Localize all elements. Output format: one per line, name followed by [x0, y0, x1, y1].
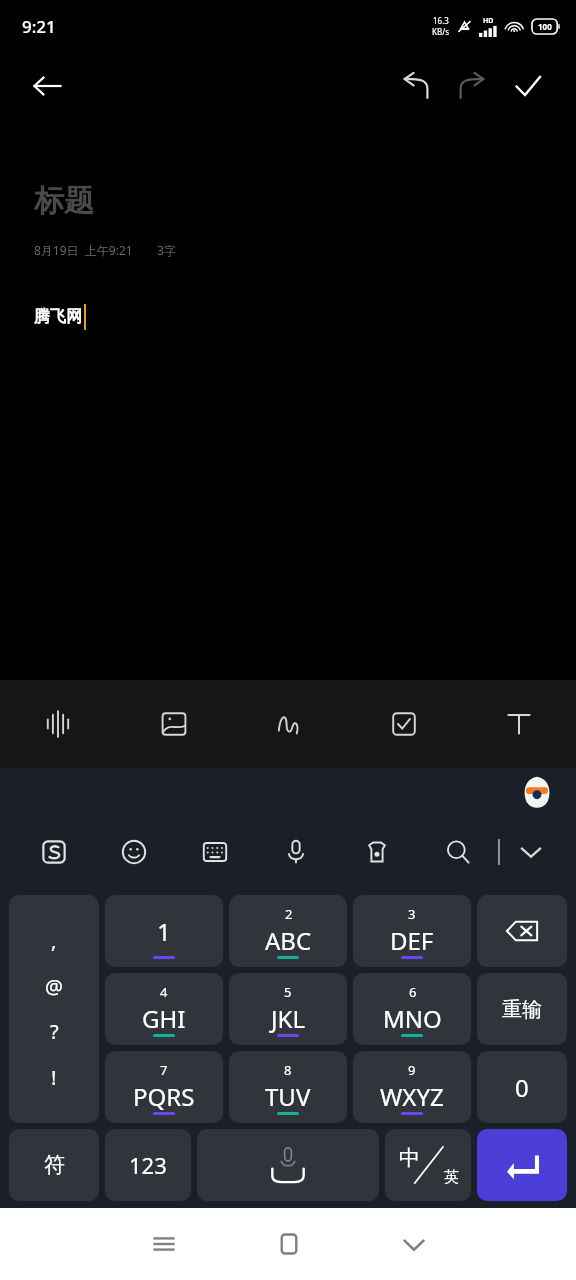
button[interactable]: Keyboard: [174, 816, 255, 888]
staticText: 6: [409, 983, 417, 1001]
button[interactable]: 6: [353, 973, 471, 1045]
button[interactable]: Voice input: [255, 816, 336, 888]
staticText: 16.3: [433, 15, 449, 26]
button[interactable]: 符: [9, 1129, 99, 1201]
staticText: 4: [160, 983, 168, 1001]
button[interactable]: Undo: [388, 58, 444, 114]
button[interactable]: 中: [385, 1129, 471, 1201]
button[interactable]: 8: [229, 1051, 347, 1123]
button[interactable]: 0: [477, 1051, 567, 1123]
staticText: 100: [538, 21, 552, 32]
staticText: MNO: [383, 1002, 442, 1035]
staticText: WXYZ: [380, 1080, 444, 1113]
staticText: 3: [408, 905, 416, 923]
button[interactable]: Done: [500, 58, 556, 114]
button[interactable]: 4: [105, 973, 223, 1045]
staticText: ?: [50, 1018, 59, 1045]
staticText: KB/s: [432, 26, 449, 37]
staticText: DEF: [390, 924, 434, 957]
button[interactable]: Back: [351, 1208, 476, 1280]
staticText: !: [51, 1064, 57, 1091]
button[interactable]: Enter: [477, 1129, 567, 1201]
button[interactable]: Audio: [0, 680, 116, 768]
button[interactable]: Redo: [444, 58, 500, 114]
button[interactable]: Assistant: [518, 773, 556, 811]
button[interactable]: 3: [353, 895, 471, 967]
staticText: HD: [483, 16, 494, 26]
button[interactable]: 1: [105, 895, 223, 967]
staticText: GHI: [142, 1002, 186, 1035]
staticText: 7: [160, 1061, 168, 1079]
button[interactable]: Search: [417, 816, 498, 888]
staticText: JKL: [271, 1002, 305, 1035]
staticText: TUV: [265, 1080, 311, 1113]
staticText: 符: [44, 1152, 65, 1178]
button[interactable]: Recents: [101, 1208, 226, 1280]
staticText: @: [45, 973, 63, 1000]
button[interactable]: Sogou: [14, 816, 94, 888]
button[interactable]: 7: [105, 1051, 223, 1123]
staticText: 0: [515, 1071, 529, 1104]
button[interactable]: Back: [22, 61, 72, 111]
staticText: 2: [285, 905, 293, 923]
staticText: 9:21: [22, 15, 56, 38]
button[interactable]: 9: [353, 1051, 471, 1123]
staticText: PQRS: [133, 1080, 195, 1113]
staticText: 英: [444, 1168, 459, 1187]
button[interactable]: Image: [116, 680, 231, 768]
staticText: 5: [284, 983, 292, 1001]
staticText: 标题: [34, 182, 94, 220]
button[interactable]: Backspace: [477, 895, 567, 967]
staticText: 重输: [502, 997, 542, 1022]
button[interactable]: Space: [197, 1129, 379, 1201]
button[interactable]: Home: [226, 1208, 351, 1280]
staticText: 中: [399, 1145, 420, 1171]
staticText: ,: [51, 927, 57, 954]
staticText: 123: [129, 1150, 167, 1180]
staticText: 8: [284, 1061, 292, 1079]
button[interactable]: 5: [229, 973, 347, 1045]
button[interactable]: Handwriting: [231, 680, 346, 768]
button[interactable]: 123: [105, 1129, 191, 1201]
staticText: 3字: [157, 242, 176, 258]
staticText: 腾飞网: [34, 307, 82, 327]
staticText: 9: [408, 1061, 416, 1079]
button[interactable]: ,: [9, 895, 99, 1123]
staticText: ABC: [265, 924, 312, 957]
button[interactable]: Theme: [336, 816, 417, 888]
button[interactable]: 2: [229, 895, 347, 967]
button[interactable]: Hide keyboard: [500, 816, 562, 888]
button[interactable]: Emoji: [94, 816, 174, 888]
staticText: 8月19日 上午9:21: [34, 242, 133, 258]
button[interactable]: Checklist: [346, 680, 461, 768]
button[interactable]: Text style: [461, 680, 576, 768]
staticText: 1: [157, 915, 171, 948]
button[interactable]: 重输: [477, 973, 567, 1045]
